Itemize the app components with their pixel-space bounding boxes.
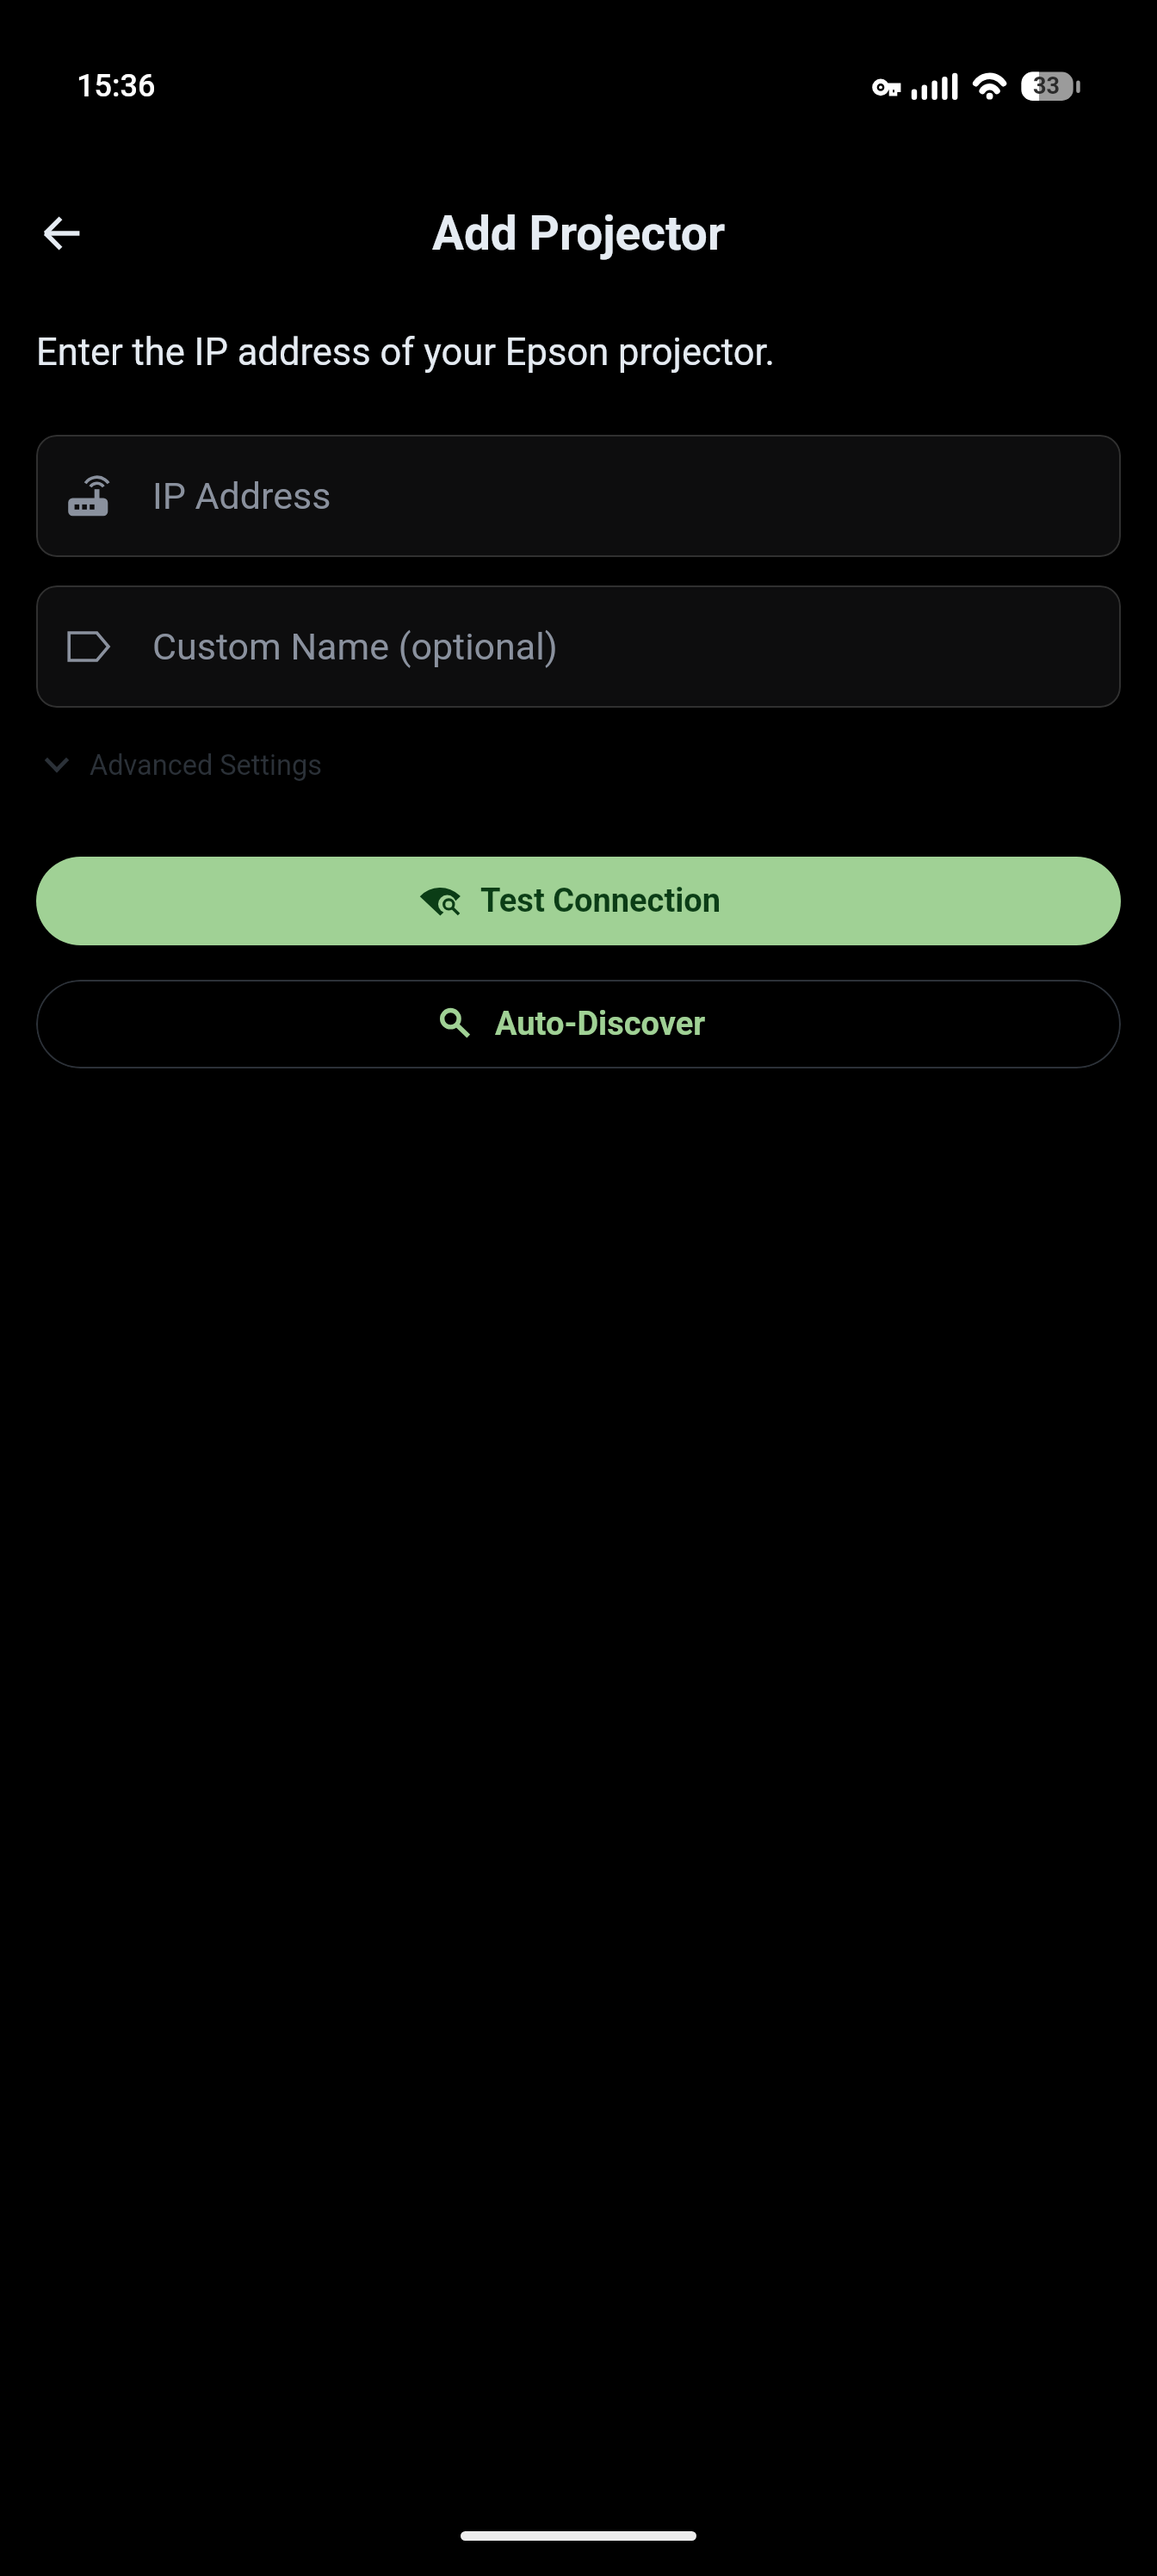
staticText: Test Connection bbox=[480, 882, 721, 920]
staticText: Enter the IP address of your Epson proje… bbox=[36, 331, 776, 375]
staticText: 33 bbox=[1033, 72, 1060, 100]
staticText: 15:36 bbox=[77, 68, 156, 104]
staticText: Add Projector bbox=[0, 206, 1157, 261]
button[interactable]: Test Connection bbox=[36, 857, 1121, 945]
staticText: IP Address bbox=[152, 474, 331, 517]
button[interactable]: IP Address bbox=[36, 435, 1121, 557]
button[interactable]: Auto-Discover bbox=[36, 980, 1121, 1068]
button[interactable]: Back bbox=[26, 197, 98, 269]
staticText: Advanced Settings bbox=[90, 749, 322, 782]
staticText: Auto-Discover bbox=[495, 1005, 706, 1043]
button[interactable]: Custom Name (optional) bbox=[36, 585, 1121, 708]
button[interactable]: Advanced Settings bbox=[40, 739, 322, 792]
staticText: Custom Name (optional) bbox=[152, 625, 558, 668]
